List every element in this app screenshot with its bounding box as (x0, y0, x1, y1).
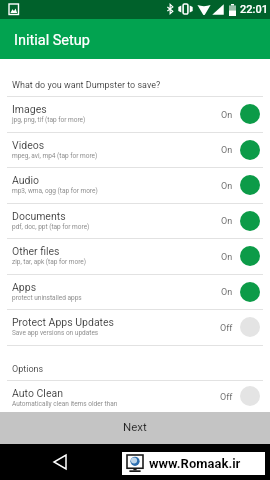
button[interactable]: Protect Apps Updates (0, 309, 270, 345)
staticText: On (221, 145, 233, 156)
staticText: What do you want Dumpster to save? (12, 80, 161, 91)
staticText: Protect Apps Updates (12, 316, 115, 328)
button[interactable]: Audio (0, 167, 270, 203)
staticText: Images (12, 103, 47, 115)
staticText: Off (220, 392, 233, 403)
staticText: Apps (12, 281, 37, 293)
staticText: Options (12, 364, 44, 375)
staticText: On (221, 216, 233, 227)
staticText: pdf, doc, ppt (tap for more) (12, 223, 90, 231)
staticText: Automatically clean items older than (12, 400, 118, 408)
button[interactable]: Videos (0, 132, 270, 167)
staticText: Next (123, 420, 147, 433)
staticText: mp3, wma, ogg (tap for more) (12, 187, 98, 195)
staticText: protect uninstalled apps (12, 294, 82, 302)
button[interactable]: Next (0, 412, 270, 444)
button[interactable]: Back (48, 449, 72, 475)
staticText: On (221, 252, 233, 263)
button[interactable]: Documents (0, 203, 270, 238)
staticText: zip, tar, apk (tap for more) (12, 258, 86, 266)
staticText: www.Romaak.ir (149, 456, 241, 471)
staticText: Auto Clean (12, 387, 63, 399)
button[interactable]: Other files (0, 238, 270, 274)
staticText: Initial Setup (14, 32, 90, 49)
staticText: On (221, 181, 233, 192)
staticText: mpeg, avi, mp4 (tap for more) (12, 152, 98, 160)
staticText: Save app versions on updates (12, 329, 99, 337)
staticText: 22:01 (240, 3, 268, 16)
staticText: Audio (12, 174, 40, 186)
button[interactable]: Apps (0, 274, 270, 309)
staticText: On (221, 110, 233, 121)
staticText: Videos (12, 139, 45, 151)
staticText: Other files (12, 245, 60, 257)
staticText: On (221, 287, 233, 298)
button[interactable]: Images (0, 96, 270, 132)
staticText: Off (220, 323, 233, 334)
staticText: jpg, png, tif (tap for more) (12, 116, 86, 124)
button[interactable]: Auto Clean (0, 380, 270, 412)
staticText: Documents (12, 210, 66, 222)
